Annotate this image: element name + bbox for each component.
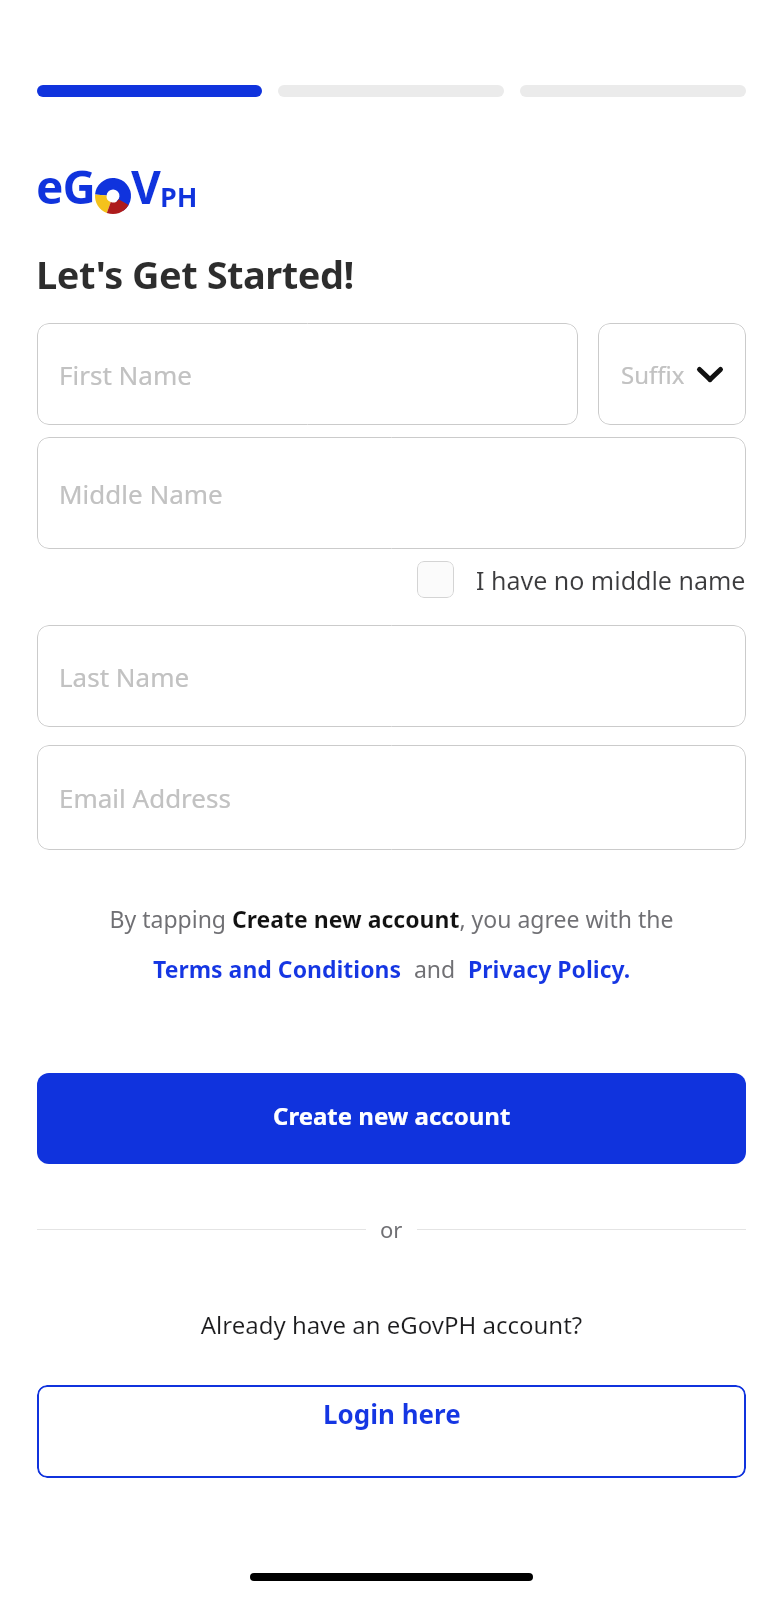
button[interactable]: Select name suffix [598, 323, 746, 425]
staticText: Email Address [59, 780, 231, 815]
button[interactable]: Create new account [37, 1073, 746, 1164]
staticText: Suffix [621, 358, 685, 391]
staticText: Create new account [273, 1099, 511, 1132]
staticText: and [402, 953, 468, 984]
button[interactable]: Terms and Conditions [153, 953, 402, 984]
staticText: Privacy Policy. [468, 953, 631, 984]
staticText: or [380, 1214, 403, 1244]
button[interactable]: I have no middle name [417, 561, 746, 598]
button[interactable]: Login here [37, 1385, 746, 1478]
staticText: eG [36, 155, 95, 218]
staticText: Middle Name [59, 476, 223, 511]
button[interactable]: Last Name [37, 625, 746, 727]
button[interactable]: First Name [37, 323, 578, 425]
staticText: First Name [59, 357, 192, 392]
staticText: Terms and Conditions [153, 953, 402, 984]
staticText: Let's Get Started! [36, 248, 354, 300]
staticText: By tapping Create new account, you agree… [20, 903, 763, 934]
staticText: PH [160, 178, 198, 215]
staticText: I have no middle name [476, 563, 746, 597]
staticText: Last Name [59, 659, 190, 694]
button[interactable]: Privacy Policy. [468, 953, 631, 984]
staticText: Login here [323, 1396, 461, 1431]
staticText: V [131, 155, 160, 218]
staticText: Already have an eGovPH account? [0, 1308, 783, 1341]
button[interactable]: Email Address [37, 745, 746, 850]
button[interactable]: Middle Name [37, 437, 746, 549]
